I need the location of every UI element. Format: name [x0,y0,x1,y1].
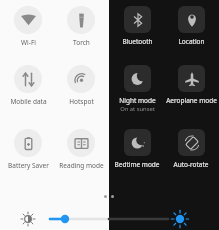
button[interactable]: Auto brightness [172,211,188,227]
staticText: On at sunset [120,105,155,113]
button[interactable]: Battery Saver [2,129,54,170]
button[interactable]: Location [166,6,216,46]
staticText: Bluetooth [122,37,153,46]
staticText: Night mode [119,96,156,105]
button[interactable]: Night mode [111,65,163,113]
button[interactable]: Aeroplane mode [165,65,217,105]
button[interactable]: Auto-rotate [165,129,217,169]
staticText: Mobile data [10,97,47,106]
button[interactable]: Wi-Fi [4,6,52,47]
staticText: Location [178,37,205,46]
button[interactable]: Bluetooth [112,6,162,46]
button[interactable]: Reading mode [55,129,107,170]
button[interactable]: Mobile data [3,65,53,106]
staticText: Reading mode [59,161,104,170]
button[interactable]: Hotspot [56,65,106,106]
staticText: Aeroplane mode [166,96,217,105]
staticText: Torch [73,38,90,47]
staticText: Wi-Fi [21,38,36,47]
button[interactable]: Torch [57,6,105,47]
button[interactable]: Brightness [21,212,35,226]
button[interactable]: Bedtime mode [111,129,163,169]
staticText: Auto-rotate [173,160,209,169]
staticText: Bedtime mode [114,160,160,169]
staticText: Battery Saver [8,161,49,170]
staticText: Hotspot [69,97,94,106]
